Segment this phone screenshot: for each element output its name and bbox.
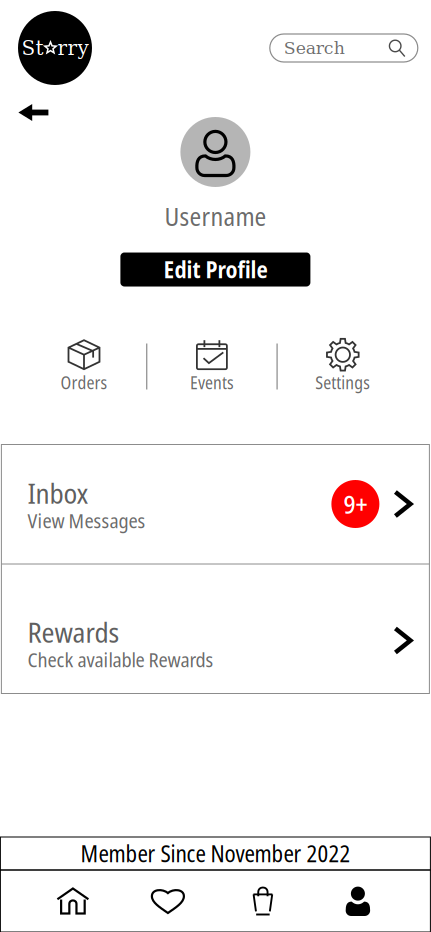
button[interactable]: Profile: [310, 876, 405, 926]
staticText: Edit Profile: [163, 254, 267, 285]
button[interactable]: Home: [25, 876, 120, 926]
button[interactable]: Starry home: [18, 11, 92, 85]
staticText: Check available Rewards: [27, 646, 213, 673]
button[interactable]: Bag: [215, 876, 310, 926]
staticText: Search: [284, 38, 345, 58]
button[interactable]: Inbox: [1, 444, 429, 563]
staticText: rry: [57, 36, 88, 60]
staticText: Username: [164, 199, 266, 233]
button[interactable]: Favorites: [120, 876, 215, 926]
staticText: 9+: [343, 487, 367, 521]
button[interactable]: Rewards: [1, 564, 429, 693]
staticText: Rewards: [27, 613, 119, 651]
button[interactable]: Settings: [278, 338, 431, 394]
staticText: View Messages: [27, 507, 145, 534]
button[interactable]: Back: [12, 98, 54, 127]
button[interactable]: Search: [270, 34, 418, 62]
button[interactable]: Orders: [0, 338, 146, 394]
staticText: Member Since November 2022: [80, 838, 350, 869]
button[interactable]: Edit Profile: [120, 252, 310, 286]
button[interactable]: Events: [147, 338, 276, 394]
staticText: St: [21, 36, 43, 60]
staticText: Events: [190, 371, 234, 394]
staticText: Orders: [60, 371, 107, 394]
staticText: Inbox: [27, 474, 88, 512]
staticText: Settings: [315, 371, 370, 394]
